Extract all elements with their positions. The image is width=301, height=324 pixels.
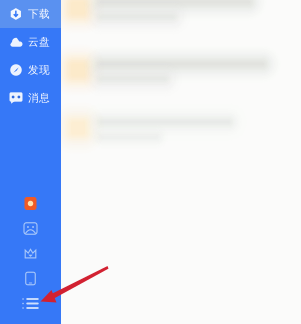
staticText: 发现 xyxy=(28,63,50,76)
staticText: 云盘 xyxy=(28,35,50,48)
button[interactable]: Membership xyxy=(0,241,61,266)
button[interactable]: 发现 xyxy=(0,56,61,84)
button[interactable]: Games xyxy=(0,216,61,241)
button[interactable]: 消息 xyxy=(0,84,61,112)
button[interactable]: 云盘 xyxy=(0,28,61,56)
staticText: 消息 xyxy=(28,91,50,104)
staticText: 下载 xyxy=(28,7,50,20)
button[interactable]: More xyxy=(0,291,61,316)
button[interactable]: 下载 xyxy=(0,0,61,28)
button[interactable]: Mobile app xyxy=(0,266,61,291)
button[interactable]: App Store xyxy=(0,191,61,216)
